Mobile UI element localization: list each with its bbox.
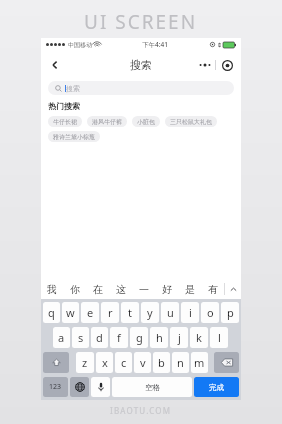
button[interactable]: c [115, 352, 132, 373]
button[interactable]: h [150, 327, 168, 348]
staticText: s [78, 330, 84, 345]
staticText: 完成 [209, 383, 224, 392]
button[interactable]: y [141, 302, 159, 323]
button[interactable]: Expand candidates [225, 279, 241, 299]
button[interactable]: v [134, 352, 151, 373]
button[interactable]: b [153, 352, 170, 373]
button[interactable]: j [170, 327, 188, 348]
staticText: 热门搜索 [48, 101, 80, 111]
button[interactable]: 123 [43, 377, 68, 397]
staticText: q [48, 305, 55, 320]
button[interactable]: g [130, 327, 148, 348]
button[interactable]: 雅诗兰黛小棕瓶 [48, 131, 100, 142]
button[interactable]: x [96, 352, 113, 373]
button[interactable]: Switch language [70, 377, 89, 397]
staticText: UI SCREEN [84, 9, 198, 35]
staticText: a [58, 330, 65, 345]
button[interactable]: k [190, 327, 208, 348]
button[interactable]: 空格 [112, 377, 192, 397]
button[interactable]: 是 [178, 279, 201, 299]
staticText: n [177, 355, 184, 370]
button[interactable]: 一 [132, 279, 155, 299]
button[interactable]: p [221, 302, 239, 323]
staticText: 这 [116, 283, 126, 296]
staticText: x [102, 355, 108, 370]
staticText: 中国移动 [68, 41, 92, 49]
staticText: 下午4:41 [142, 40, 168, 49]
button[interactable]: u [161, 302, 179, 323]
button[interactable]: d [91, 327, 108, 348]
button[interactable]: i [181, 302, 199, 323]
staticText: h [156, 330, 163, 345]
staticText: p [227, 305, 234, 320]
button[interactable]: Target [219, 57, 235, 73]
staticText: w [66, 305, 75, 320]
staticText: 牛仔长裙 [53, 118, 77, 126]
button[interactable]: w [62, 302, 79, 323]
staticText: y [147, 305, 153, 320]
button[interactable]: 港风牛仔裤 [87, 116, 127, 127]
staticText: 是 [185, 283, 195, 296]
staticText: o [207, 305, 214, 320]
button[interactable]: Shift [43, 352, 69, 373]
staticText: IBAOTU.COM [110, 405, 172, 416]
button[interactable]: a [53, 327, 70, 348]
button[interactable]: 完成 [194, 377, 239, 397]
staticText: j [178, 330, 181, 345]
button[interactable]: Voice input [91, 377, 110, 397]
button[interactable]: 三只松鼠大礼包 [165, 116, 217, 127]
staticText: 在 [93, 283, 103, 296]
staticText: 港风牛仔裤 [92, 118, 122, 126]
button[interactable]: 你 [63, 279, 86, 299]
staticText: f [117, 330, 121, 345]
staticText: e [87, 305, 94, 320]
staticText: v [140, 355, 146, 370]
button[interactable]: Delete [214, 352, 239, 373]
button[interactable]: m [191, 352, 208, 373]
staticText: 有 [208, 283, 218, 296]
staticText: 搜索 [66, 84, 80, 93]
button[interactable]: More [197, 57, 213, 73]
staticText: 我 [47, 283, 57, 296]
staticText: t [128, 305, 132, 320]
button[interactable]: s [72, 327, 89, 348]
staticText: u [167, 305, 174, 320]
staticText: l [218, 330, 221, 345]
button[interactable]: 小脏包 [132, 116, 160, 127]
button[interactable]: r [101, 302, 119, 323]
button[interactable]: o [201, 302, 219, 323]
staticText: m [194, 355, 205, 370]
staticText: i [189, 305, 192, 320]
button[interactable]: f [110, 327, 128, 348]
staticText: 空格 [145, 383, 160, 392]
button[interactable]: l [210, 327, 228, 348]
staticText: r [108, 305, 113, 320]
staticText: k [196, 330, 202, 345]
staticText: 123 [49, 382, 62, 392]
staticText: c [121, 355, 127, 370]
button[interactable]: 搜索 [48, 81, 234, 95]
button[interactable]: z [76, 352, 94, 373]
button[interactable]: 有 [201, 279, 224, 299]
staticText: z [82, 355, 88, 370]
staticText: 搜索 [130, 58, 152, 72]
staticText: 好 [162, 283, 172, 296]
staticText: d [96, 330, 103, 345]
staticText: b [158, 355, 165, 370]
staticText: 三只松鼠大礼包 [170, 118, 212, 126]
button[interactable]: Back [45, 55, 65, 75]
staticText: 小脏包 [137, 118, 155, 126]
button[interactable]: e [81, 302, 99, 323]
button[interactable]: n [172, 352, 189, 373]
staticText: 一 [139, 283, 149, 296]
button[interactable]: 这 [109, 279, 132, 299]
button[interactable]: q [43, 302, 60, 323]
button[interactable]: 好 [155, 279, 178, 299]
staticText: 你 [70, 283, 80, 296]
button[interactable]: 我 [41, 279, 63, 299]
staticText: g [136, 330, 143, 345]
staticText: 雅诗兰黛小棕瓶 [53, 133, 95, 141]
button[interactable]: t [121, 302, 139, 323]
button[interactable]: 在 [86, 279, 109, 299]
button[interactable]: 牛仔长裙 [48, 116, 82, 127]
